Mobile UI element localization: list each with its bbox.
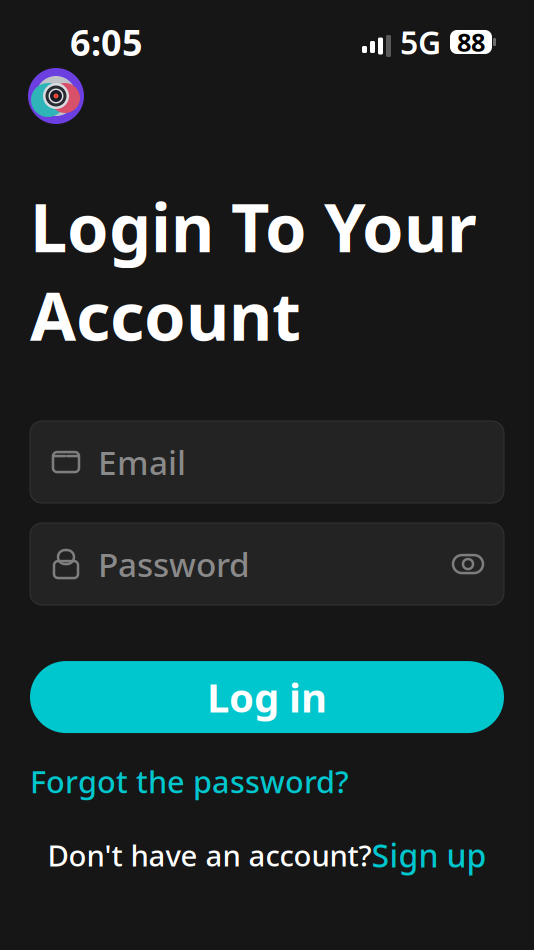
- staticText: Sign up: [371, 834, 486, 876]
- staticText: 88: [457, 25, 485, 59]
- button[interactable]: Forgot the password?: [30, 755, 349, 808]
- staticText: 6:05: [70, 18, 143, 66]
- button[interactable]: Log in: [30, 661, 504, 733]
- staticText: Login To Your Account: [30, 182, 477, 359]
- staticText: Forgot the password?: [30, 761, 349, 802]
- staticText: Email: [98, 440, 186, 484]
- button[interactable]: Sign up: [371, 834, 486, 876]
- button[interactable]: Show password: [446, 542, 490, 586]
- staticText: Log in: [207, 670, 327, 724]
- staticText: Password: [98, 542, 250, 586]
- staticText: 5G: [400, 21, 441, 63]
- staticText: Don't have an account?: [47, 836, 371, 875]
